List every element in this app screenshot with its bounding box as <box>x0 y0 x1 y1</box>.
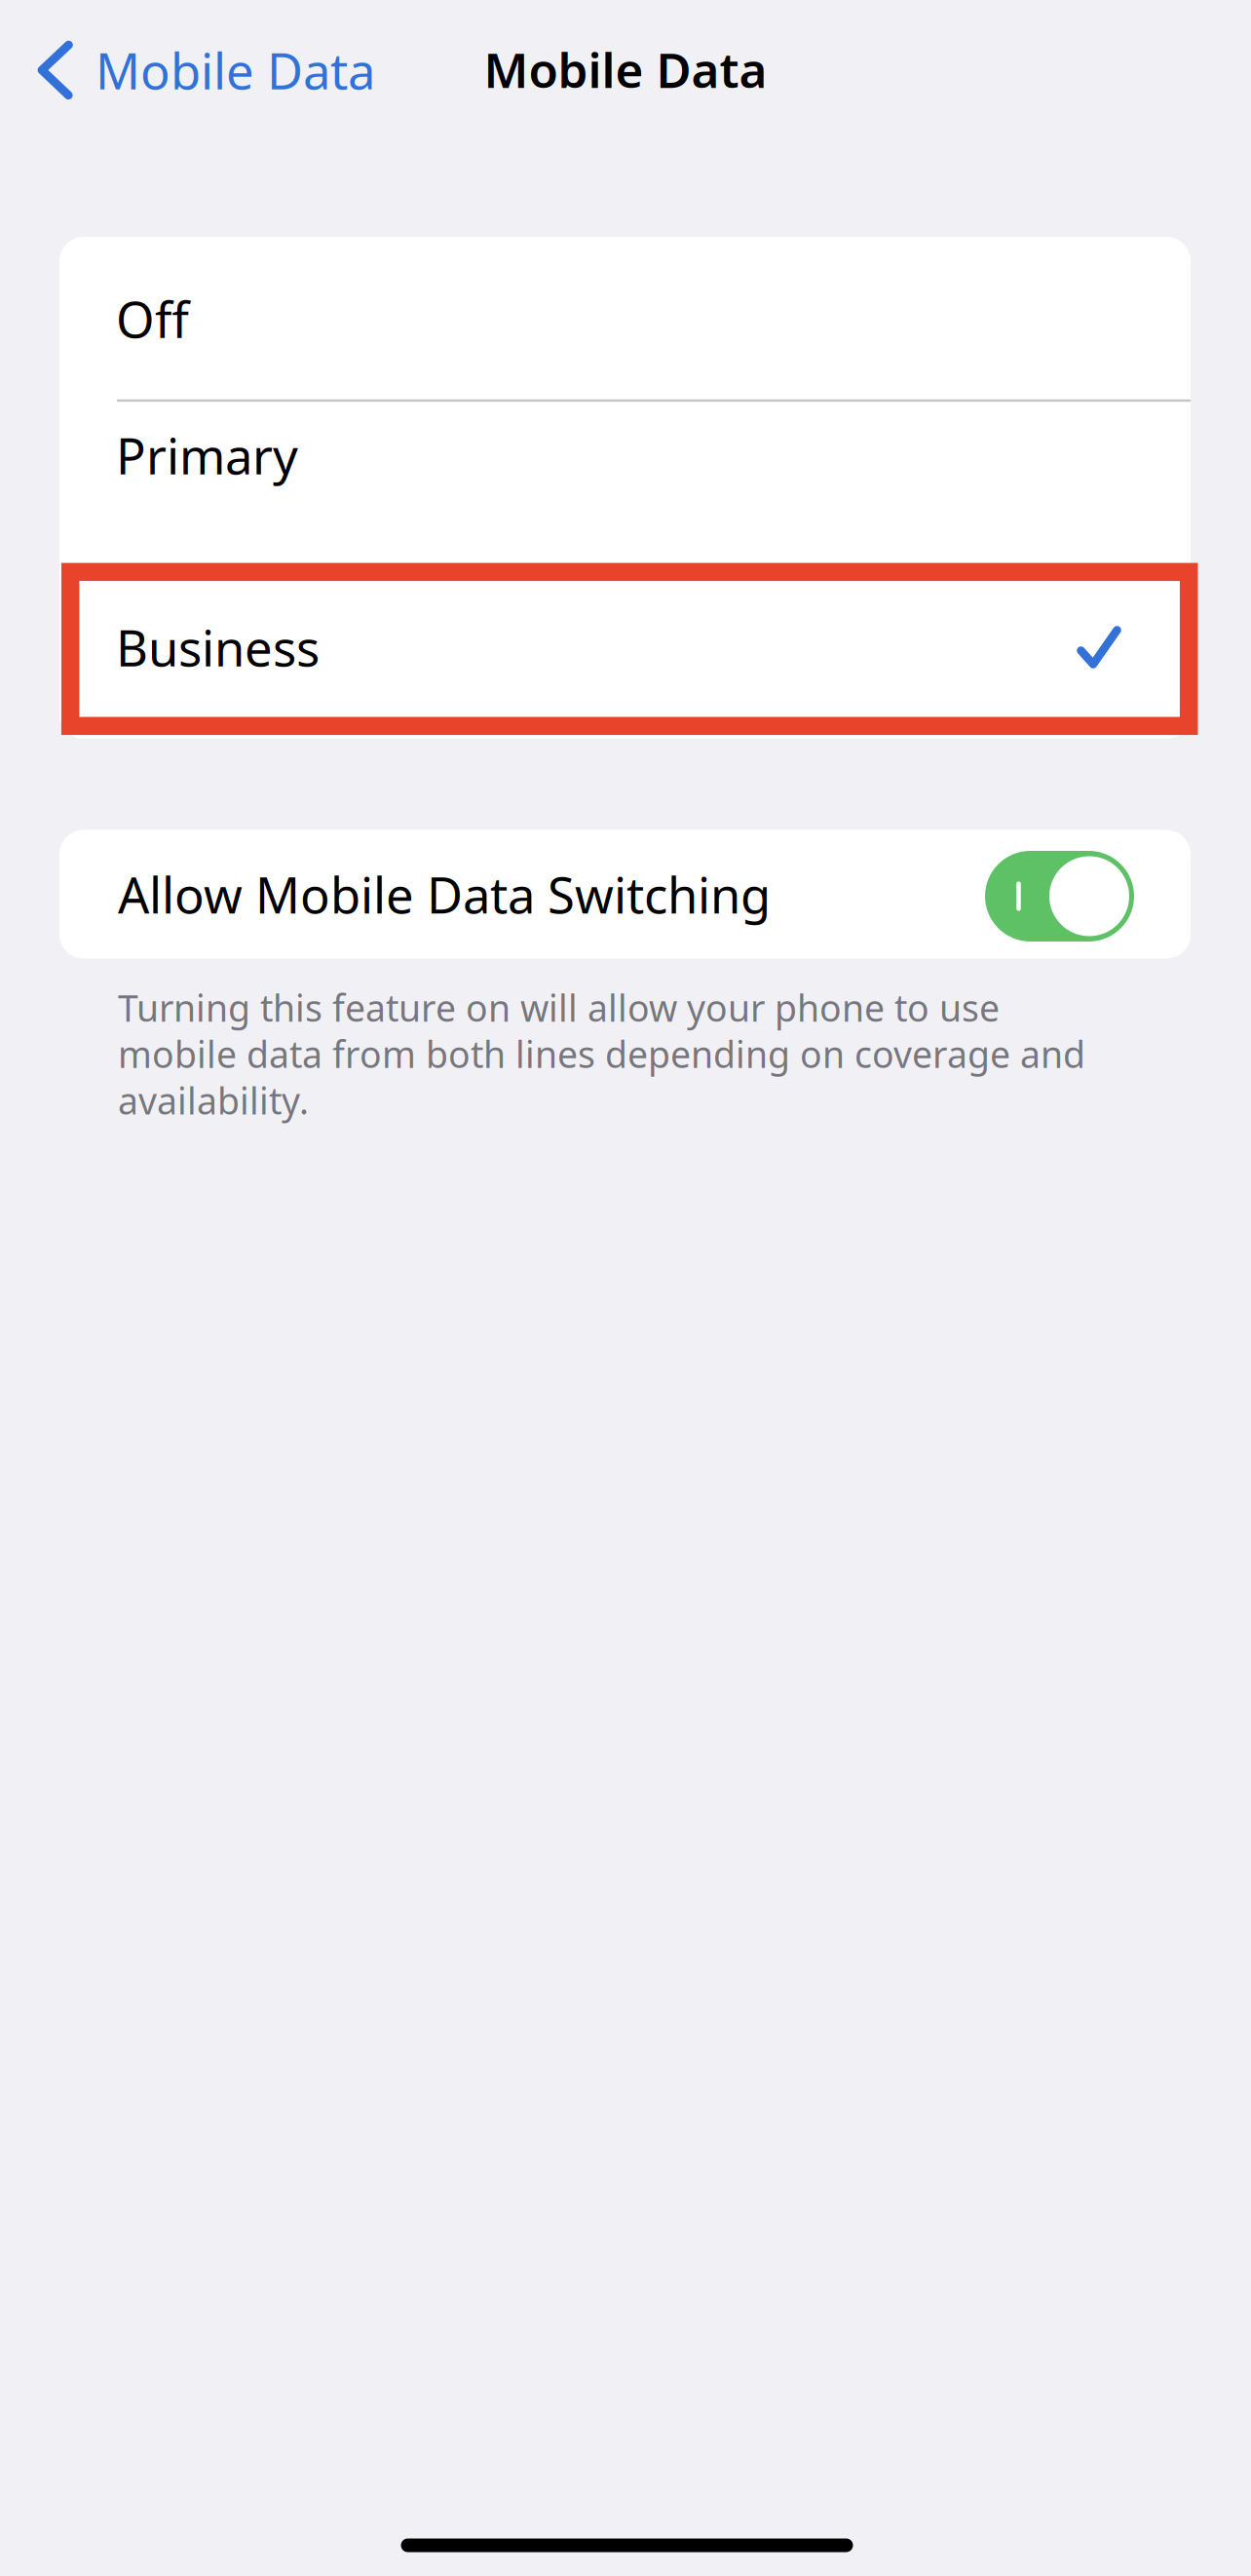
staticText: Mobile Data <box>95 37 375 103</box>
staticText: Business <box>116 614 320 680</box>
staticText: Off <box>116 286 189 352</box>
button[interactable]: Business <box>59 561 1191 733</box>
staticText: Mobile Data <box>484 37 767 101</box>
button[interactable]: Mobile Data <box>0 16 409 125</box>
staticText: Turning this feature on will allow your … <box>118 983 1085 1124</box>
staticText: Allow Mobile Data Switching <box>118 861 771 927</box>
staticText: Primary <box>116 422 298 488</box>
button[interactable]: Primary <box>59 387 1191 523</box>
button[interactable]: Allow Mobile Data Switching <box>59 830 1191 959</box>
button[interactable]: Off <box>59 237 1191 401</box>
